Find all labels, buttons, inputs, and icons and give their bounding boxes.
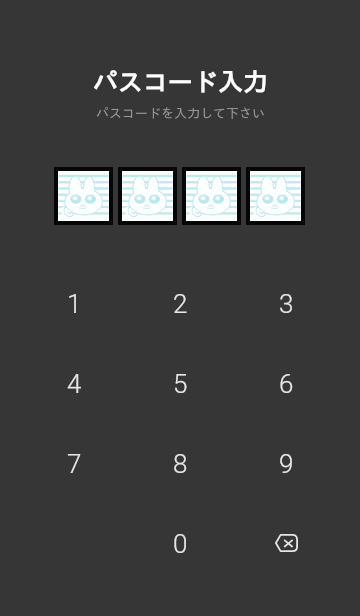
staticText: パスコード入力 — [93, 69, 268, 94]
button[interactable] — [246, 167, 305, 225]
staticText: 2 — [173, 289, 188, 319]
staticText: パスコードを入力して下さい — [96, 107, 265, 120]
button[interactable]: 9 — [233, 424, 339, 504]
staticText: 8 — [173, 449, 188, 479]
staticText: 1 — [67, 289, 82, 319]
staticText: 7 — [67, 449, 82, 479]
button[interactable]: 6 — [233, 344, 339, 424]
button[interactable] — [182, 167, 241, 225]
staticText: 9 — [279, 449, 294, 479]
button[interactable]: 4 — [21, 344, 127, 424]
staticText: 3 — [279, 289, 294, 319]
button[interactable]: 8 — [127, 424, 233, 504]
button[interactable]: Delete — [233, 504, 339, 584]
button[interactable]: 1 — [21, 264, 127, 344]
button[interactable] — [54, 167, 113, 225]
button[interactable]: 3 — [233, 264, 339, 344]
button[interactable]: 5 — [127, 344, 233, 424]
button[interactable] — [118, 167, 177, 225]
staticText: 5 — [173, 369, 188, 399]
button[interactable]: 0 — [127, 504, 233, 584]
staticText: 6 — [279, 369, 294, 399]
staticText: 0 — [173, 529, 188, 559]
button[interactable]: 2 — [127, 264, 233, 344]
button[interactable]: 7 — [21, 424, 127, 504]
staticText: 4 — [67, 369, 82, 399]
